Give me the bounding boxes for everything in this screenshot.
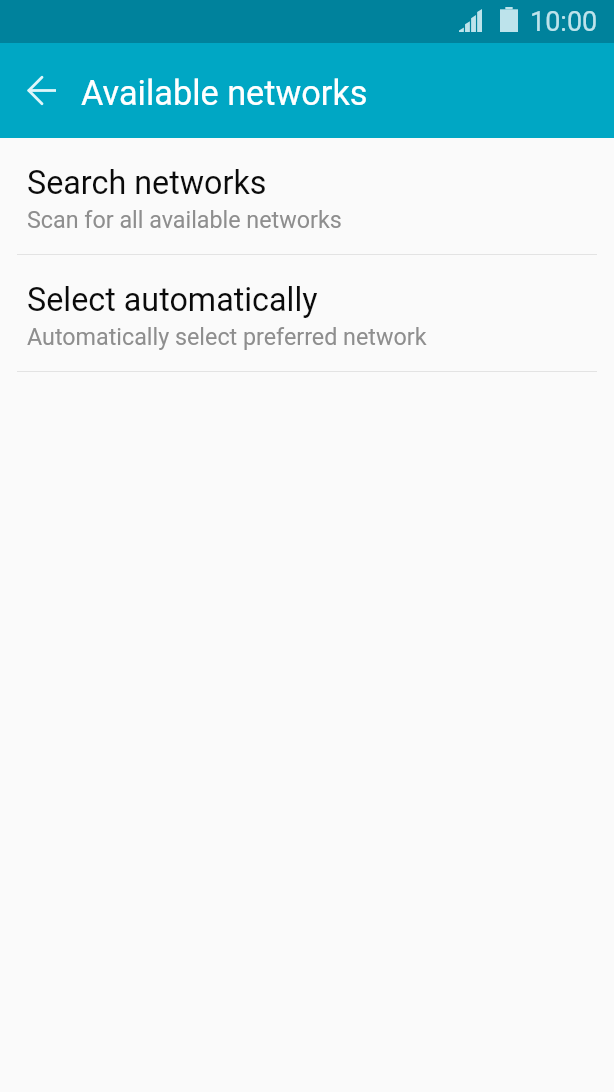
- button[interactable]: Select automatically: [0, 255, 614, 372]
- button[interactable]: Search networks: [0, 138, 614, 255]
- staticText: Available networks: [81, 73, 368, 113]
- button[interactable]: Back: [7, 43, 77, 138]
- staticText: Automatically select preferred network: [27, 323, 427, 350]
- staticText: Select automatically: [27, 281, 318, 319]
- staticText: Scan for all available networks: [27, 206, 342, 233]
- staticText: Search networks: [27, 164, 267, 202]
- staticText: 10:00: [530, 6, 598, 38]
